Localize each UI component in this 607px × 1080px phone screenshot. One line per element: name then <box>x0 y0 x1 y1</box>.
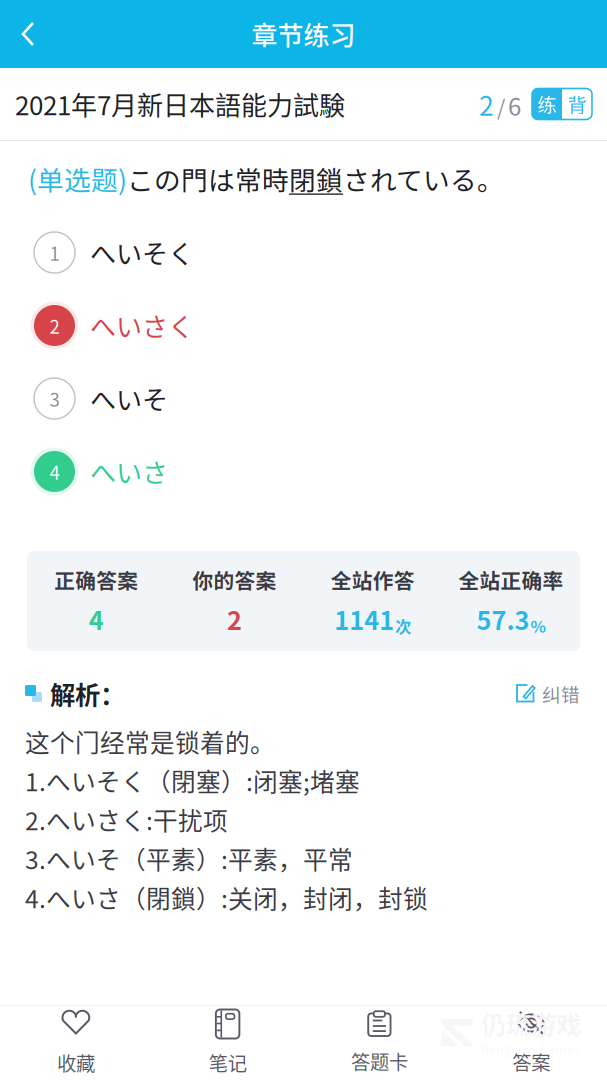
staticText: % <box>530 614 545 637</box>
button[interactable]: 1 <box>0 216 607 289</box>
staticText: 次 <box>395 614 411 637</box>
button[interactable]: 笔记 <box>152 1006 304 1080</box>
staticText: 2 <box>227 601 242 637</box>
staticText: 背 <box>567 90 586 118</box>
staticText: 57.3 <box>476 601 529 637</box>
button[interactable]: 背 <box>562 88 592 119</box>
staticText: 答案 <box>512 1047 550 1075</box>
button[interactable]: 3 <box>0 362 607 435</box>
staticText: 2 <box>49 312 59 339</box>
staticText: へいそく <box>90 234 194 271</box>
staticText: 3 <box>49 385 59 412</box>
staticText: 解析： <box>50 675 125 712</box>
button[interactable]: Back <box>0 0 56 68</box>
staticText: この門は常時 <box>127 159 289 198</box>
staticText: 1.へいそく（閉塞）:闭塞;堵塞 <box>25 763 360 798</box>
staticText: Rengwan Games <box>481 1040 580 1058</box>
staticText: 4 <box>89 601 104 637</box>
staticText: 收藏 <box>57 1048 95 1076</box>
staticText: 1 <box>49 239 59 266</box>
staticText: 这个门经常是锁着的。 <box>25 724 275 759</box>
staticText: 章节练习 <box>251 15 355 53</box>
staticText: 6 <box>508 88 521 123</box>
button[interactable]: 答题卡 <box>303 1006 455 1080</box>
staticText: 笔记 <box>209 1048 247 1076</box>
staticText: へいさ <box>90 453 168 490</box>
staticText: 你的答案 <box>192 565 276 595</box>
staticText: 1141 <box>334 601 394 637</box>
staticText: 纠错 <box>542 680 580 707</box>
button[interactable]: 收藏 <box>0 1006 152 1080</box>
staticText: 练 <box>537 90 556 118</box>
staticText: 仍琉游戏 <box>481 1005 581 1042</box>
staticText: へいそ <box>90 380 168 417</box>
staticText: 2.へいさく:干扰项 <box>25 802 228 837</box>
button[interactable]: 2 <box>0 289 607 362</box>
button[interactable]: 纠错 <box>505 674 590 713</box>
button[interactable]: 答案 <box>455 1006 607 1080</box>
staticText: されている。 <box>343 159 504 198</box>
staticText: へいさく <box>90 307 194 344</box>
staticText: 2021年7月新日本語能力試験 <box>15 85 345 123</box>
button[interactable]: 练 <box>532 88 562 119</box>
staticText: 閉鎖 <box>289 159 343 198</box>
staticText: 3.へいそ（平素）:平素，平常 <box>25 841 353 876</box>
staticText: 4 <box>49 458 59 485</box>
staticText: 全站正确率 <box>458 565 563 595</box>
staticText: 2 <box>479 85 494 123</box>
staticText: 正确答案 <box>54 565 138 595</box>
staticText: / <box>497 91 505 122</box>
staticText: 4.へいさ（閉鎖）:关闭，封闭，封锁 <box>25 880 428 915</box>
staticText: 全站作答 <box>331 565 415 595</box>
staticText: (单选题) <box>28 159 127 198</box>
button[interactable]: 4 <box>0 435 607 508</box>
staticText: 答题卡 <box>351 1047 408 1075</box>
